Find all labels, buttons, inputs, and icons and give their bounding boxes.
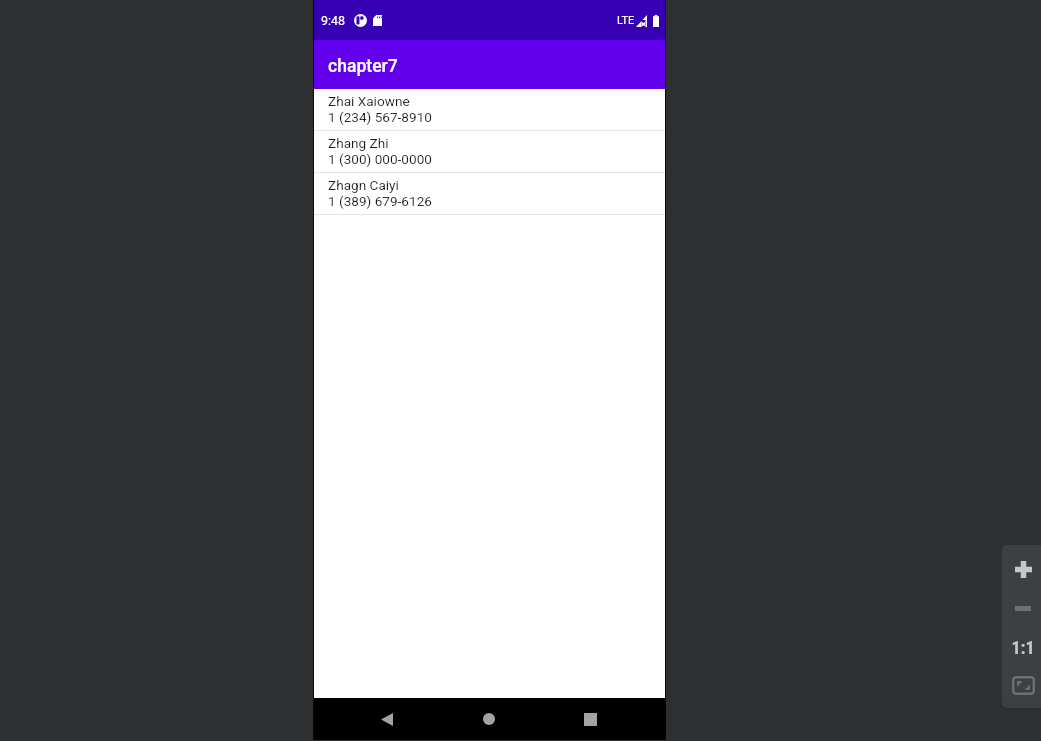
staticText: chapter7: [328, 56, 398, 77]
staticText: 9:48: [321, 13, 346, 28]
button[interactable]: Recent apps: [569, 698, 612, 740]
button[interactable]: 1:1: [1005, 628, 1041, 666]
button[interactable]: Back: [365, 698, 408, 740]
button[interactable]: Zhagn Caiyi: [314, 173, 665, 214]
staticText: Zhai Xaiowne: [328, 93, 410, 109]
button[interactable]: Zoom in: [1005, 550, 1041, 588]
staticText: 1 (300) 000-0000: [328, 151, 432, 167]
staticText: Zhang Zhi: [328, 135, 389, 151]
button[interactable]: Zhai Xaiowne: [314, 89, 665, 130]
staticText: 1 (389) 679-6126: [328, 193, 432, 209]
staticText: LTE: [617, 14, 635, 27]
staticText: 1:1: [1011, 637, 1035, 658]
staticText: 1 (234) 567-8910: [328, 109, 432, 125]
button[interactable]: Zhang Zhi: [314, 131, 665, 172]
button[interactable]: Zoom out: [1005, 589, 1041, 627]
staticText: Zhagn Caiyi: [328, 177, 399, 193]
button[interactable]: Fit to window: [1005, 667, 1041, 704]
button[interactable]: Home: [467, 698, 510, 740]
